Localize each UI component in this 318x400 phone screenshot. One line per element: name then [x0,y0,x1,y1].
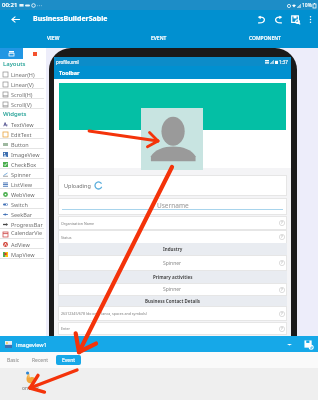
staticText: ? [281,234,283,240]
staticText: ? [281,326,283,332]
button[interactable]: EVENT [106,28,212,48]
button[interactable]: Linear(V) [0,79,44,89]
staticText: SeekBar [11,211,33,218]
staticText: 26312345/678 (do only lanca, spaces and … [61,311,147,316]
staticText: VIEW [47,35,60,42]
button[interactable]: Save [287,11,304,28]
staticText: 10% [302,2,312,9]
button[interactable]: Button [0,139,44,149]
button[interactable]: SeekBar [0,209,44,219]
staticText: Uploading [64,182,91,189]
staticText: EditText [11,131,32,138]
staticText: TextView [11,121,34,128]
staticText: 00:21 [2,1,18,9]
staticText: WebView [11,191,35,198]
staticText: ? [281,287,283,293]
button[interactable]: AdView [0,239,44,249]
button[interactable]: ListView [0,179,44,189]
button[interactable]: EditText [0,129,44,139]
button[interactable]: Spinner [0,169,44,179]
button[interactable]: COMPONENT [212,28,318,48]
button[interactable]: CalendarView [0,229,44,239]
button[interactable]: Delete [23,48,46,59]
staticText: ListView [11,181,32,188]
button[interactable]: onClick [13,370,47,392]
staticText: CheckBox [11,161,37,168]
staticText: ? [281,220,283,226]
button[interactable]: Back [6,10,24,28]
staticText: Enter [61,326,71,331]
staticText: AdView [11,241,30,248]
button[interactable]: More options [304,13,317,26]
staticText: onClick [22,385,39,392]
button[interactable]: Event [56,355,81,365]
button[interactable]: ImageView [0,149,44,159]
staticText: Switch [11,201,28,208]
staticText: Recent [32,357,49,364]
button[interactable]: MapView [0,249,44,259]
button[interactable]: ProgressBar [0,219,44,229]
button[interactable]: VIEW [0,28,106,48]
button[interactable]: Recent [28,355,53,365]
staticText: Toolbar [59,69,80,76]
staticText: MapView [11,251,35,258]
staticText: Widgets [3,110,27,118]
staticText: Scroll(V) [11,101,32,108]
staticText: Spinner [11,171,31,178]
staticText: Basic [7,357,20,364]
staticText: 1:37 [279,59,288,65]
staticText: Spinner [163,260,182,267]
button[interactable]: WebView [0,189,44,199]
staticText: ? [281,311,283,317]
button[interactable]: TextView [0,119,44,129]
staticText: EVENT [151,35,167,42]
staticText: ImageView [11,151,40,158]
button[interactable]: Linear(H) [0,69,44,79]
staticText: Button [11,141,29,148]
button[interactable]: imageview1 [0,336,318,352]
button[interactable]: Scroll(V) [0,99,44,109]
staticText: Industry [163,246,183,252]
staticText: ? [281,260,283,266]
button[interactable]: CheckBox [0,159,44,169]
staticText: imageview1 [16,341,47,348]
button[interactable]: Switch [0,199,44,209]
staticText: Linear(V) [11,81,34,88]
staticText: Linear(H) [11,71,35,78]
button[interactable]: Save project [302,338,315,351]
staticText: Status [61,235,72,240]
button[interactable]: Scroll(H) [0,89,44,99]
staticText: Event [62,357,76,364]
staticText: CalendarView [11,229,44,239]
button[interactable]: Redo [270,11,287,28]
staticText: Organisation Name [61,221,95,226]
staticText: BusinessBuilderSable [33,14,108,24]
button[interactable]: Basic [1,355,26,365]
staticText: Spinner [163,286,182,293]
staticText: Layouts [3,60,26,68]
staticText: COMPONENT [249,35,281,42]
staticText: Primary activities [153,274,193,280]
button[interactable]: Undo [253,11,270,28]
staticText: Business Contact Details [145,298,201,304]
staticText: ProgressBar [11,221,43,228]
staticText: Scroll(H) [11,91,33,98]
staticText: Username [157,201,189,210]
button[interactable]: Widgets palette [0,48,23,59]
staticText: profile.xml [56,59,79,65]
